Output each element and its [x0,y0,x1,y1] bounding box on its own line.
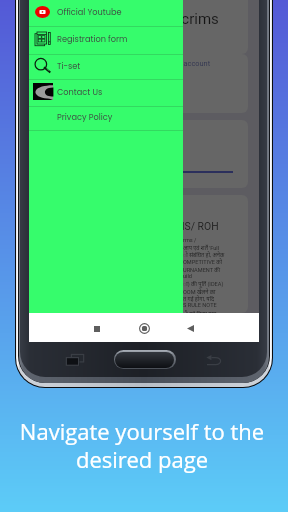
staticText: OMPETITIVE को [183,258,223,266]
staticText: Login to your account [139,59,211,68]
button[interactable]: Official Youtube [29,1,183,27]
button[interactable]: Contact Us [29,80,183,107]
staticText: Contact Us [57,86,103,97]
staticText: त गई होगा, यदि [183,295,215,303]
staticText: Ti-set [57,60,81,71]
button[interactable]: Home [135,319,154,338]
staticText: rms / [183,237,197,244]
staticText: URNAMENT की [183,266,221,274]
button[interactable]: Back [206,354,222,366]
staticText: ी गई किया गया [183,310,217,313]
button[interactable]: Registration form [29,27,183,55]
staticText: Anti crims [151,10,219,28]
staticText: ा) की पूर्ति (IDEA) [183,280,224,288]
staticText: ो संबंधित हो, अनेक [183,251,225,259]
staticText: Official Youtube [57,6,122,17]
button[interactable]: Recent apps [87,319,106,338]
staticText: Registration form [57,33,128,44]
staticText: OOM खेलने का [183,288,216,296]
button[interactable]: Ti-set [29,55,183,80]
button[interactable]: Back [181,319,200,338]
button[interactable]: Home button [114,350,176,369]
button[interactable]: Recent apps [66,354,84,366]
staticText: Privacy Policy [57,111,113,122]
staticText: आप एवं शर्तें 'Full [183,244,220,252]
button[interactable]: Privacy Policy [29,107,183,131]
staticText: uild [183,273,192,280]
staticText: S RULE NOTE [183,302,217,309]
staticText: Navigate yourself to the desired page [0,416,286,475]
staticText: TERMS/ ROH [157,220,219,232]
